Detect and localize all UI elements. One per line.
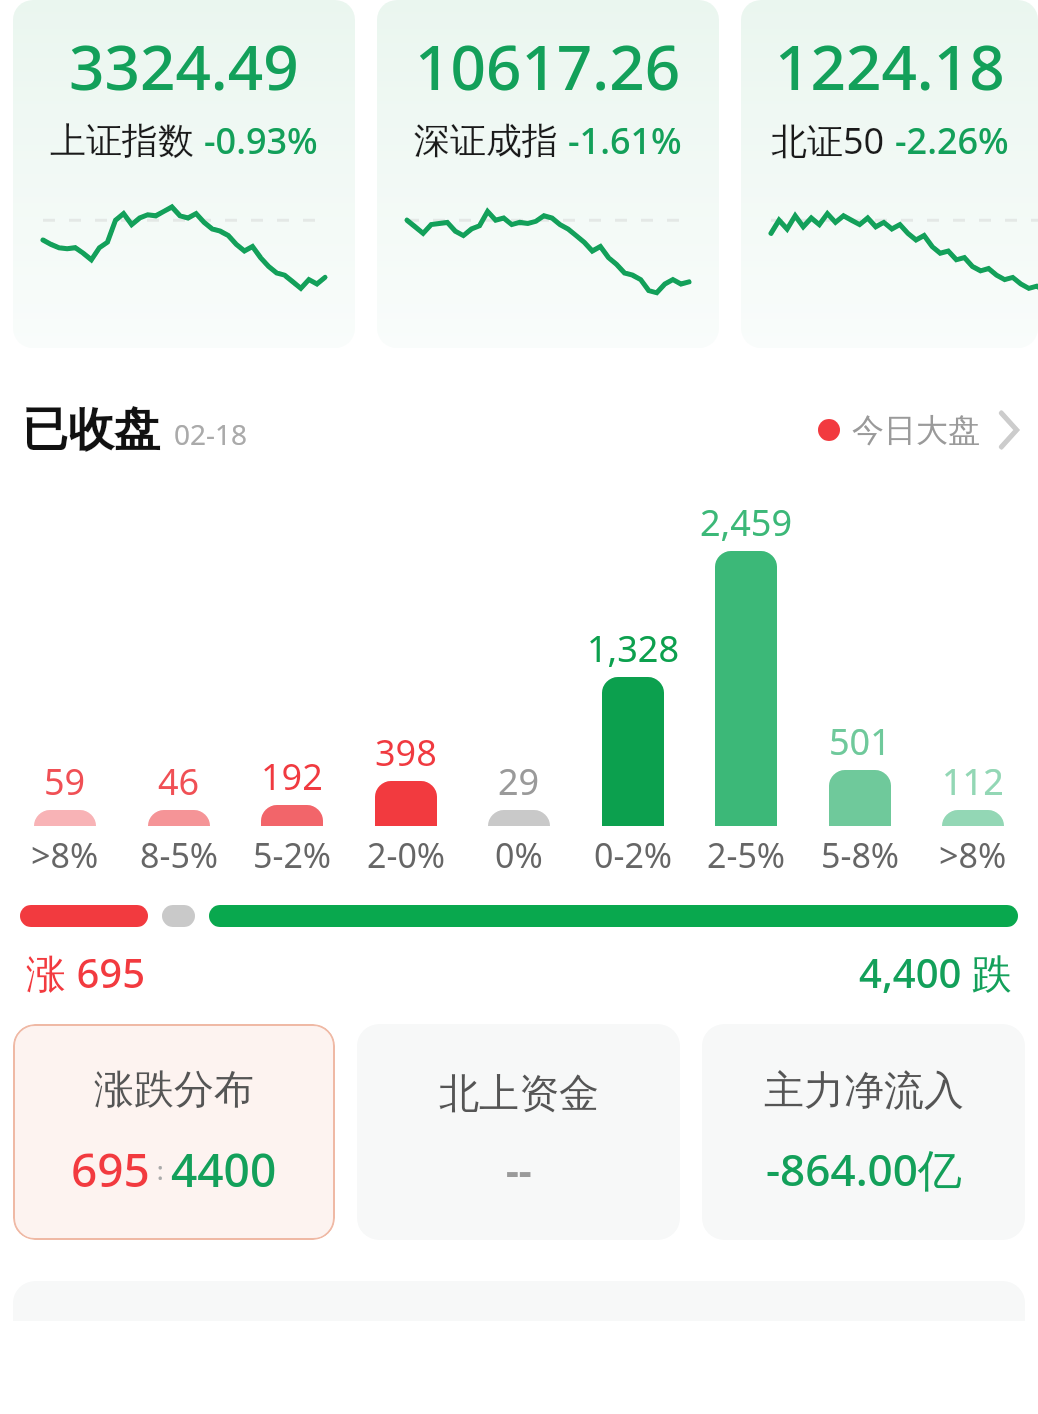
button[interactable]: 501	[807, 490, 913, 878]
staticText: 涨跌分布	[94, 1064, 254, 1114]
staticText: -864.00亿	[766, 1139, 962, 1199]
button[interactable]: 今日大盘	[818, 410, 1020, 450]
staticText: 2-5%	[707, 832, 786, 878]
button[interactable]: 2,459	[693, 490, 799, 878]
staticText: -0.93%	[204, 116, 318, 165]
staticText: 192	[261, 752, 323, 801]
button[interactable]: 46	[126, 490, 232, 878]
staticText: 4400	[171, 1138, 277, 1201]
staticText: 501	[829, 717, 891, 766]
staticText: 1224.18	[775, 24, 1005, 108]
staticText: 1,328	[587, 624, 680, 673]
button[interactable]: 1224.18	[741, 0, 1038, 348]
button[interactable]: 1,328	[580, 490, 686, 878]
staticText: 0-2%	[594, 832, 673, 878]
staticText: 已收盘	[22, 401, 160, 459]
button[interactable]: 112	[920, 490, 1026, 878]
staticText: 59	[44, 757, 86, 806]
staticText: 北证50	[771, 116, 885, 165]
button[interactable]: 192	[239, 490, 345, 878]
button[interactable]: 北上资金	[357, 1024, 680, 1240]
button[interactable]: 10617.26	[377, 0, 719, 348]
button[interactable]: 29	[466, 490, 572, 878]
button[interactable]: 主力净流入	[702, 1024, 1025, 1240]
button[interactable]: 59	[12, 490, 118, 878]
staticText: 695	[71, 1138, 150, 1201]
staticText: 上证指数	[50, 118, 194, 163]
staticText: 29	[498, 757, 540, 806]
staticText: 8-5%	[140, 832, 219, 878]
button[interactable]: 3324.49	[13, 0, 355, 348]
button[interactable]	[20, 904, 1018, 928]
staticText: 2-0%	[367, 832, 446, 878]
staticText: 主力净流入	[764, 1065, 964, 1115]
button[interactable]: 涨跌分布	[13, 1024, 335, 1240]
staticText: 深证成指	[414, 118, 558, 163]
button[interactable]: 398	[353, 490, 459, 878]
staticText: >8%	[939, 832, 1007, 878]
staticText: 5-2%	[253, 832, 332, 878]
staticText: -1.61%	[568, 116, 682, 165]
staticText: 02-18	[174, 415, 248, 453]
staticText: 北上资金	[439, 1068, 599, 1118]
staticText: 112	[942, 757, 1004, 806]
staticText: -2.26%	[895, 116, 1009, 165]
staticText: 46	[158, 757, 200, 806]
staticText: :	[150, 1152, 171, 1187]
staticText: 5-8%	[821, 832, 900, 878]
staticText: 10617.26	[415, 24, 681, 108]
staticText: 涨 695	[26, 945, 146, 1000]
staticText: 398	[375, 728, 437, 777]
staticText: 3324.49	[69, 24, 299, 108]
staticText: >8%	[31, 832, 99, 878]
staticText: --	[506, 1142, 532, 1196]
staticText: 今日大盘	[852, 410, 980, 450]
staticText: 2,459	[700, 498, 793, 547]
staticText: 4,400 跌	[859, 945, 1012, 1000]
staticText: 0%	[495, 832, 543, 878]
